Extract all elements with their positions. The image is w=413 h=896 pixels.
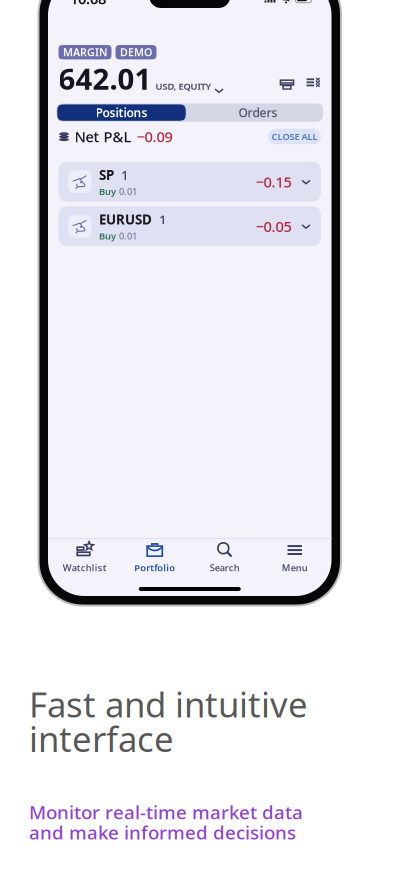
staticText: CLOSE ALL: [271, 130, 317, 143]
button[interactable]: CLOSE ALL: [268, 129, 321, 144]
staticText: 10:08: [70, 0, 106, 8]
button[interactable]: Positions: [57, 104, 186, 121]
staticText: 0.01: [119, 185, 137, 197]
staticText: EURUSD: [99, 210, 152, 228]
staticText: 1: [159, 210, 167, 228]
button[interactable]: SP: [58, 162, 321, 202]
staticText: −0.05: [255, 216, 291, 236]
staticText: 1: [121, 166, 129, 184]
staticText: −0.15: [255, 172, 291, 191]
staticText: Fast and intuitive: [29, 681, 308, 727]
staticText: DEMO: [120, 45, 152, 59]
staticText: Orders: [238, 105, 277, 120]
button[interactable]: Sort and filter: [306, 75, 320, 89]
button[interactable]: Deposit: [279, 79, 294, 90]
staticText: USD, EQUITY: [155, 80, 211, 92]
staticText: 0.01: [119, 230, 137, 242]
button[interactable]: Orders: [194, 104, 322, 121]
staticText: Net P&L: [74, 127, 131, 146]
staticText: MARGIN: [63, 45, 107, 59]
staticText: Buy: [99, 185, 116, 197]
staticText: Positions: [95, 105, 147, 120]
staticText: Portfolio: [134, 562, 175, 574]
staticText: SP: [99, 166, 114, 184]
staticText: interface: [29, 715, 174, 761]
staticText: Search: [210, 562, 240, 574]
staticText: Menu: [282, 562, 308, 574]
staticText: Buy: [99, 230, 116, 242]
staticText: Monitor real-time market data: [29, 800, 303, 824]
button[interactable]: Search: [190, 540, 260, 574]
button[interactable]: EURUSD: [58, 206, 321, 246]
staticText: −0.09: [136, 127, 172, 146]
button[interactable]: Menu: [260, 540, 330, 574]
button[interactable]: Portfolio: [120, 540, 190, 574]
staticText: and make informed decisions: [29, 820, 296, 845]
staticText: 642.01: [58, 59, 151, 98]
button[interactable]: Watchlist: [50, 540, 120, 574]
staticText: Watchlist: [63, 562, 107, 574]
